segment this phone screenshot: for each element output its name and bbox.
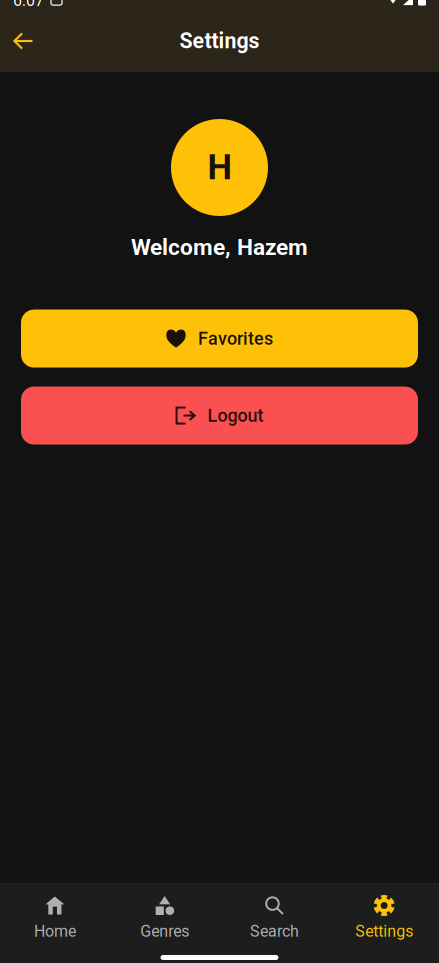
button[interactable]: Back [0, 17, 46, 65]
staticText: Home [34, 922, 76, 941]
staticText: Genres [140, 922, 189, 941]
button[interactable]: Home [0, 884, 110, 942]
staticText: Settings [179, 28, 259, 53]
button[interactable]: Logout [21, 387, 418, 445]
button[interactable]: Favorites [21, 310, 418, 368]
staticText: Logout [207, 405, 263, 426]
staticText: H [207, 147, 231, 188]
button[interactable]: Genres [110, 884, 220, 942]
staticText: Favorites [198, 328, 273, 349]
staticText: Settings [355, 922, 413, 941]
staticText: Search [250, 922, 299, 941]
button[interactable]: Settings [329, 884, 439, 942]
staticText: 6:07 [13, 0, 44, 10]
button[interactable]: Search [219, 884, 329, 942]
staticText: Welcome, Hazem [131, 234, 308, 261]
